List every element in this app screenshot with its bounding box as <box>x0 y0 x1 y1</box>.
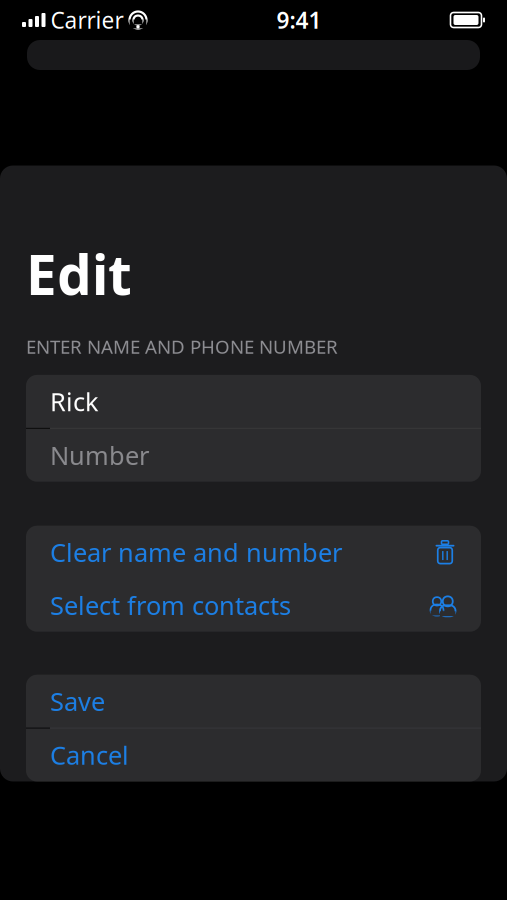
button[interactable]: Cancel <box>26 728 481 781</box>
staticText: Rick <box>50 385 99 418</box>
staticText: Select from contacts <box>50 588 291 622</box>
staticText: Carrier <box>50 5 123 35</box>
staticText: ENTER NAME AND PHONE NUMBER <box>26 334 338 359</box>
staticText: Edit <box>26 237 132 310</box>
staticText: 9:41 <box>276 5 321 35</box>
button[interactable]: Save <box>26 675 481 728</box>
staticText: Clear name and number <box>50 535 342 569</box>
button[interactable]: Clear name and number <box>26 526 481 579</box>
staticText: Cancel <box>50 738 129 772</box>
staticText: Save <box>50 684 105 718</box>
staticText: Number <box>50 438 149 472</box>
button[interactable]: Select from contacts <box>26 579 481 632</box>
